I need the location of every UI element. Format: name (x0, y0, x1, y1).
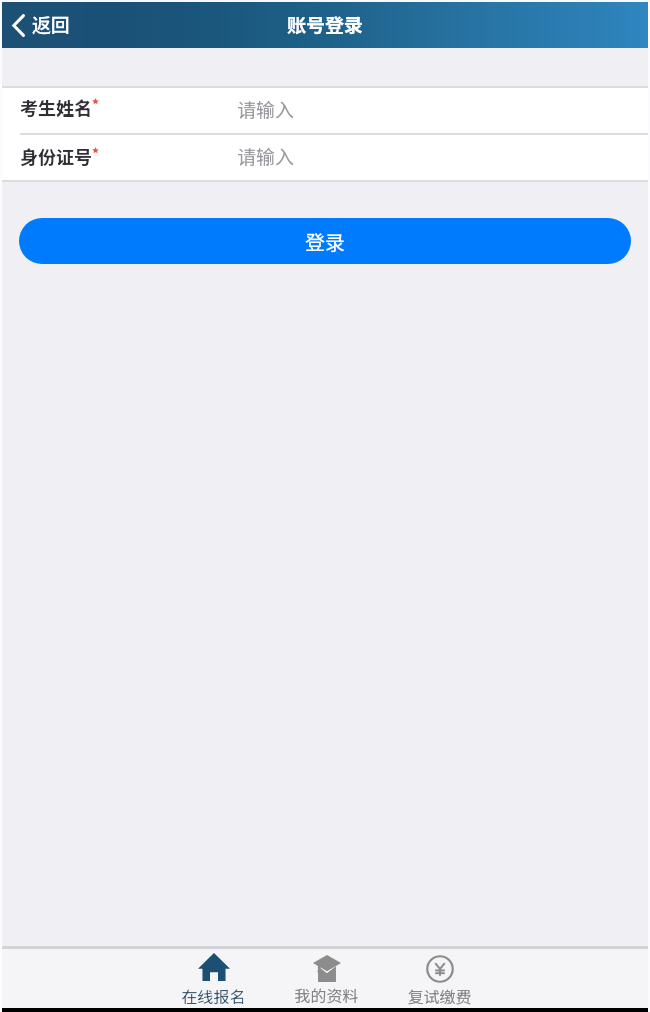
other: 返回 Back (12, 14, 25, 37)
staticText: 在线报名 (181, 984, 246, 1007)
button[interactable]: 考生姓名 (0, 88, 650, 133)
button[interactable]: 身份证号 (0, 135, 650, 180)
staticText: 请输入 (237, 95, 295, 123)
staticText: 请输入 (237, 142, 295, 170)
staticText: 我的资料 (294, 983, 359, 1006)
button[interactable]: 复试缴费 (383, 949, 496, 1007)
staticText: 返回 (32, 10, 71, 38)
button[interactable]: 我的资料 (270, 949, 383, 1006)
staticText: 复试缴费 (407, 984, 472, 1007)
staticText: 身份证号 (20, 143, 92, 169)
staticText: 登录 (305, 227, 345, 256)
button[interactable]: 登录 (19, 218, 631, 264)
staticText: 账号登录 (287, 10, 364, 38)
button[interactable]: 返回 Back (0, 0, 81, 48)
staticText: 考生姓名 (20, 94, 92, 120)
button[interactable]: 在线报名 (157, 949, 270, 1007)
